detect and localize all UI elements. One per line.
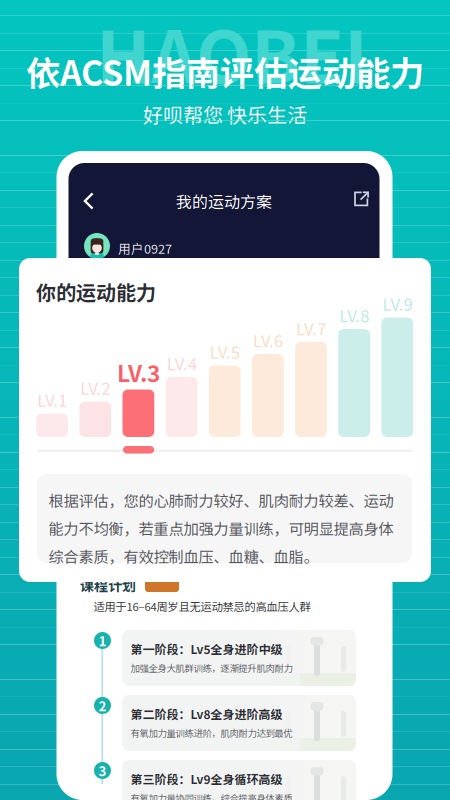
staticText: 有氧加力量协同训练，综合提高身体素质 bbox=[130, 791, 292, 800]
staticText: LV.8 bbox=[339, 303, 369, 327]
button[interactable]: Back bbox=[83, 192, 95, 210]
button[interactable]: 第二阶段：Lv8全身进阶高级 bbox=[122, 695, 356, 751]
staticText: LV.3 bbox=[117, 356, 160, 388]
staticText: LV.7 bbox=[296, 316, 326, 340]
staticText: 3 bbox=[98, 761, 106, 780]
staticText: 适用于16–64周岁且无运动禁忌的高血压人群 bbox=[93, 598, 310, 614]
staticText: HAOBEI bbox=[96, 0, 368, 104]
staticText: 加强全身大肌群训练，逐渐提升肌肉耐力 bbox=[130, 661, 292, 674]
staticText: 2 bbox=[98, 696, 106, 715]
staticText: 课程计划 bbox=[80, 575, 136, 595]
button[interactable]: 第一阶段：Lv5全身进阶中级 bbox=[122, 630, 356, 686]
button[interactable]: Share bbox=[353, 191, 370, 207]
staticText: 用户0927 bbox=[118, 239, 172, 257]
staticText: 好呗帮您 快乐生活 bbox=[143, 99, 307, 128]
staticText: 你的运动能力 bbox=[36, 277, 156, 306]
staticText: LV.4 bbox=[167, 351, 197, 375]
staticText: 有氧加力量训练进阶，肌肉耐力达到最优 bbox=[130, 726, 292, 739]
staticText: 1 bbox=[98, 631, 106, 650]
staticText: 根据评估，您的心肺耐力较好、肌肉耐力较差、运动能力不均衡，若重点加强力量训练，可… bbox=[48, 489, 393, 567]
button[interactable]: 第三阶段：Lv9全身循环高级 bbox=[122, 760, 356, 800]
staticText: LV.5 bbox=[210, 339, 240, 363]
staticText: 我的运动方案 bbox=[176, 189, 272, 213]
staticText: 依ACSM指南评估运动能力 bbox=[26, 46, 424, 96]
staticText: 第一阶段：Lv5全身进阶中级 bbox=[130, 640, 282, 657]
staticText: LV.2 bbox=[80, 375, 110, 399]
staticText: LV.9 bbox=[382, 291, 412, 315]
staticText: 第二阶段：Lv8全身进阶高级 bbox=[130, 705, 282, 722]
staticText: LV.6 bbox=[253, 328, 283, 352]
staticText: LV.1 bbox=[37, 387, 67, 411]
staticText: 第三阶段：Lv9全身循环高级 bbox=[130, 770, 282, 787]
